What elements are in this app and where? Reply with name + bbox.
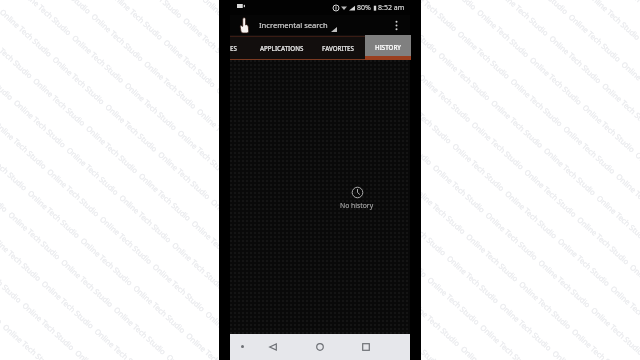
button[interactable]: Back [266,340,280,354]
staticText: 80% [357,3,371,13]
staticText: FAVORITES [322,44,354,52]
button[interactable]: More options [388,17,404,33]
button[interactable]: Recent apps [359,340,373,354]
button[interactable]: Home [313,340,327,354]
button[interactable]: HISTORY [365,35,411,60]
staticText: 8:52 am [378,3,405,13]
staticText: HISTORY [375,43,401,51]
staticText: Incremental search [259,20,328,30]
staticText: No history [340,201,374,210]
staticText: APPLICATIONS [260,44,304,52]
button[interactable]: ES [223,35,243,60]
staticText: ES [230,44,237,52]
button[interactable]: FAVORITES [316,35,359,60]
button[interactable]: APPLICATIONS [254,35,309,60]
